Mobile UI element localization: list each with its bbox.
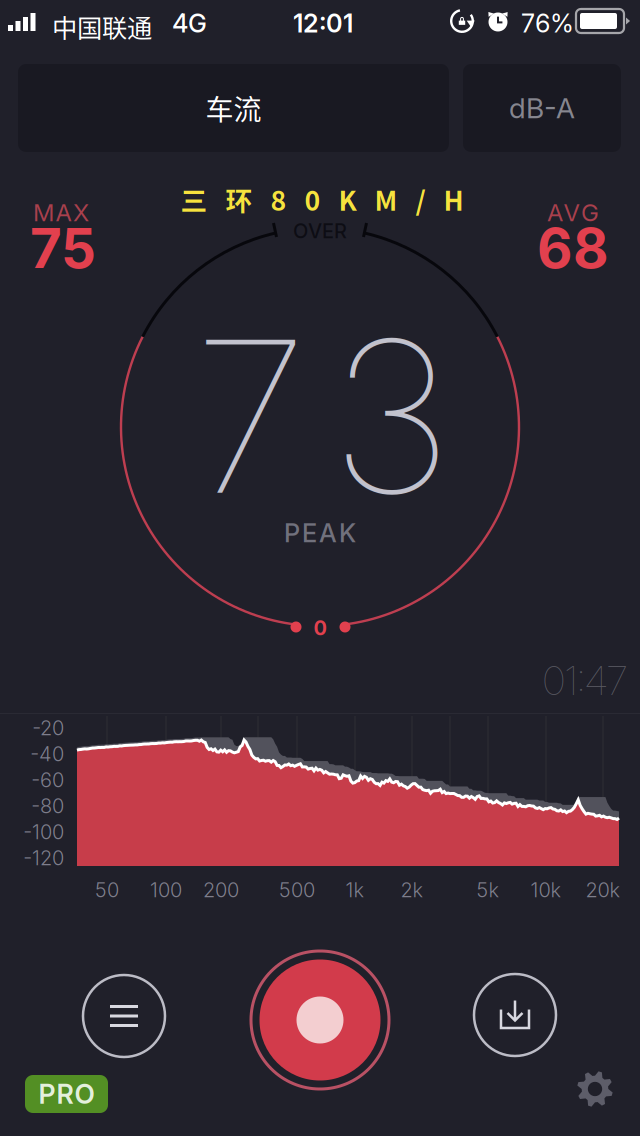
staticText: -120 — [23, 846, 64, 870]
button[interactable]: Menu — [83, 975, 165, 1057]
staticText: 75 — [30, 215, 96, 281]
staticText: -20 — [32, 716, 64, 740]
staticText: 0 — [313, 616, 326, 640]
staticText: 2k — [400, 878, 423, 902]
staticText: 76% — [521, 8, 574, 39]
button[interactable]: Record — [250, 950, 390, 1090]
staticText: 车流 — [205, 88, 261, 128]
button[interactable]: Settings — [576, 1070, 614, 1108]
staticText: -40 — [30, 742, 64, 766]
staticText: 1k — [345, 878, 364, 902]
staticText: dB-A — [509, 91, 575, 125]
staticText: 68 — [537, 215, 609, 281]
staticText: 500 — [279, 878, 315, 902]
staticText: OVER — [293, 219, 347, 243]
staticText: 100 — [150, 878, 182, 902]
staticText: 中国联通 — [52, 8, 152, 45]
staticText: AVG — [547, 198, 599, 227]
button[interactable]: Save recording — [474, 974, 556, 1056]
staticText: 20k — [585, 878, 620, 902]
staticText: -80 — [31, 794, 64, 818]
staticText: MAX — [33, 198, 89, 227]
button[interactable]: PRO — [25, 1075, 108, 1113]
staticText: -100 — [23, 820, 64, 844]
staticText: -60 — [31, 768, 64, 792]
staticText: 10k — [530, 878, 561, 902]
staticText: 三环80KM/H — [180, 180, 463, 218]
button[interactable]: 车流 — [18, 64, 449, 152]
button[interactable]: dB-A — [463, 64, 621, 152]
staticText: PRO — [38, 1078, 94, 1110]
staticText: 200 — [203, 878, 239, 902]
staticText: 01:47 — [543, 658, 627, 704]
staticText: 5k — [476, 878, 499, 902]
staticText: 50 — [95, 878, 119, 902]
staticText: 73 — [193, 289, 453, 543]
staticText: 4G — [172, 8, 207, 39]
staticText: PEAK — [284, 518, 356, 548]
staticText: 12:01 — [293, 8, 353, 39]
